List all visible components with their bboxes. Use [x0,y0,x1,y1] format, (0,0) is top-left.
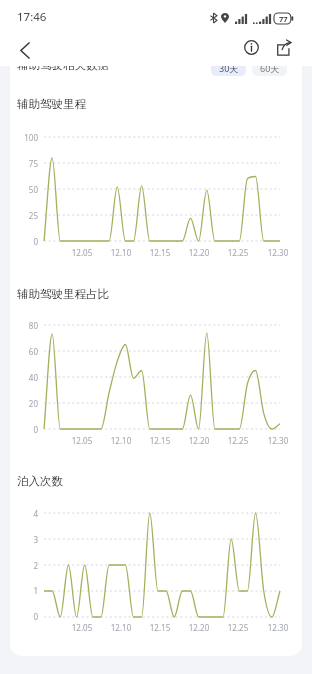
staticText: 1 [33,585,38,596]
staticText: 77 [279,14,288,24]
staticText: 30天 [219,62,239,74]
staticText: 12.20 [185,435,213,446]
staticText: 辅助驾驶里程 [17,97,86,111]
staticText: 12.30 [264,622,292,633]
staticText: 20 [28,398,38,409]
staticText: 12.05 [68,247,96,258]
staticText: 40 [28,372,38,383]
staticText: 75 [28,158,38,169]
staticText: 12.15 [146,435,174,446]
button[interactable]: Back [10,36,38,64]
button[interactable]: Info [237,33,265,61]
staticText: 80 [28,320,38,331]
staticText: 12.25 [224,435,252,446]
button[interactable]: Share [269,34,297,62]
staticText: 12.20 [185,247,213,258]
staticText: 12.20 [185,622,213,633]
staticText: 0 [33,236,38,247]
button[interactable]: 30天 [211,59,246,76]
staticText: 12.30 [264,247,292,258]
staticText: 17:46 [17,9,47,25]
staticText: 辅助驾驶相关数据 [17,58,109,72]
staticText: 12.10 [107,622,135,633]
staticText: 0 [33,424,38,435]
staticText: 12.05 [68,435,96,446]
staticText: 12.25 [224,622,252,633]
staticText: 12.05 [68,622,96,633]
staticText: 辅助驾驶里程占比 [17,287,109,301]
staticText: 60 [28,346,38,357]
staticText: 2 [33,560,38,571]
staticText: 12.15 [146,622,174,633]
staticText: 12.25 [224,247,252,258]
staticText: 0 [33,611,38,622]
staticText: 4 [33,508,38,519]
staticText: 60天 [260,62,280,74]
button[interactable]: 60天 [252,59,287,76]
staticText: 50 [28,184,38,195]
staticText: 12.10 [107,247,135,258]
staticText: 3 [33,534,38,545]
staticText: 12.30 [264,435,292,446]
staticText: 12.15 [146,247,174,258]
staticText: 泊入次数 [17,474,63,488]
staticText: 25 [28,210,38,221]
staticText: 12.10 [107,435,135,446]
staticText: 100 [24,132,38,143]
